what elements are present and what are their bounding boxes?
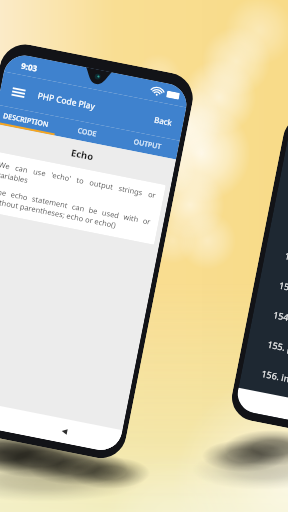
staticText: OUTPUT <box>133 137 162 152</box>
button[interactable]: 151. printf() <box>268 207 288 269</box>
button[interactable]: DESCRIPTION <box>0 105 58 135</box>
staticText: 9:03 <box>20 60 38 74</box>
staticText: The echo statement can be used with or w… <box>0 186 151 236</box>
staticText: CODE <box>77 126 97 139</box>
button[interactable]: 152. zend_version() <box>263 237 288 299</box>
button[interactable]: 149. trim() <box>280 148 288 211</box>
staticText: PHP Code Play <box>37 90 96 113</box>
button[interactable]: 154. ob_get_clean() <box>251 295 288 358</box>
button[interactable]: 153. ob_start() <box>257 266 288 328</box>
staticText: DESCRIPTION <box>2 111 49 130</box>
button[interactable]: Menu <box>11 84 26 100</box>
button[interactable]: CODE <box>54 117 119 147</box>
button[interactable]: Back <box>57 424 72 439</box>
button[interactable]: 155. preg_match() <box>245 325 288 387</box>
staticText: Back <box>153 114 173 128</box>
button[interactable]: OUTPUT <box>115 129 180 159</box>
button[interactable]: 156. implode() <box>239 354 288 417</box>
button[interactable]: 150. ucfirst() <box>274 178 288 240</box>
button[interactable]: Back <box>142 108 185 134</box>
staticText: We can use 'echo' to output strings or v… <box>0 159 157 210</box>
staticText: 155. preg_match() <box>266 338 288 364</box>
staticText: 154. ob_get_clean() <box>272 308 288 336</box>
staticText: Echo <box>0 130 175 179</box>
staticText: 153. ob_start() <box>278 279 288 302</box>
staticText: 156. implode() <box>261 367 288 391</box>
staticText: 152. zend_version() <box>284 249 288 277</box>
